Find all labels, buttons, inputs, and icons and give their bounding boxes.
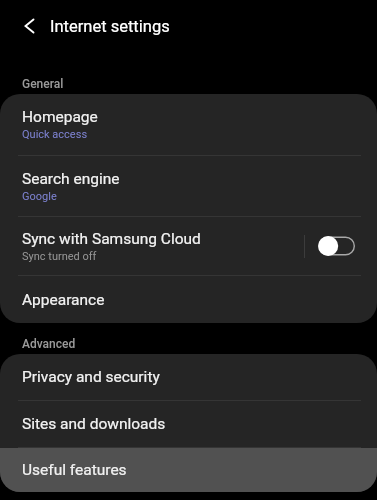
button[interactable]: Sync with Samsung Cloud toggle [318,235,355,257]
staticText: Search engine [22,170,120,188]
staticText: Appearance [22,291,105,309]
button[interactable]: Search engine [0,156,377,216]
button[interactable]: Privacy and security [0,354,377,400]
staticText: Sites and downloads [22,415,166,433]
button[interactable]: Homepage [0,94,377,155]
staticText: General [22,77,64,91]
button[interactable]: Navigate up [0,0,50,52]
staticText: Internet settings [50,17,170,36]
staticText: Google [22,190,57,203]
button[interactable]: Appearance [0,276,377,323]
staticText: Sync turned off [22,250,97,263]
button[interactable]: Sites and downloads [0,401,377,447]
staticText: Homepage [22,108,98,126]
button[interactable]: Useful features [0,448,377,492]
staticText: Quick access [22,128,88,141]
staticText: Sync with Samsung Cloud [22,230,201,248]
staticText: Useful features [22,461,127,479]
staticText: Advanced [22,337,76,351]
button[interactable]: Sync with Samsung Cloud [0,217,377,275]
staticText: Privacy and security [22,368,160,386]
